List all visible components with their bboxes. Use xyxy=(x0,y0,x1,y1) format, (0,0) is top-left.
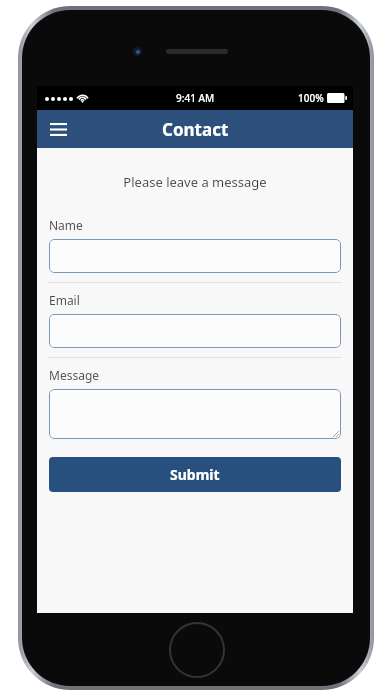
staticText: Please leave a message xyxy=(37,173,353,191)
staticText: 100% xyxy=(298,91,324,105)
staticText: Contact xyxy=(162,118,229,141)
staticText: 9:41 AM xyxy=(176,91,215,105)
staticText: Email xyxy=(49,292,80,308)
button[interactable]: Open navigation menu xyxy=(37,110,79,148)
button[interactable] xyxy=(49,314,341,348)
staticText: Message xyxy=(49,367,100,383)
staticText: Submit xyxy=(170,465,220,484)
button[interactable] xyxy=(49,239,341,273)
button[interactable] xyxy=(49,389,341,439)
staticText: Name xyxy=(49,217,83,233)
button[interactable]: Submit xyxy=(49,457,341,492)
